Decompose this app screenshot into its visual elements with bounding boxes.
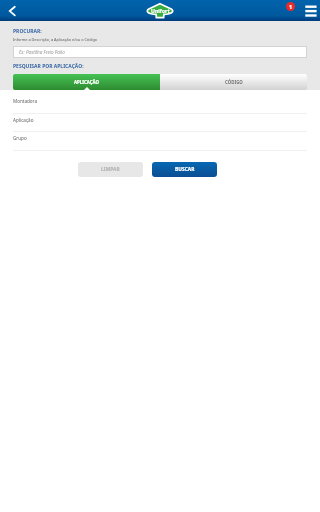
button[interactable] xyxy=(0,113,320,131)
staticText: CÓDIGO xyxy=(225,79,243,85)
button[interactable]: CÓDIGO xyxy=(160,74,307,90)
button[interactable]: BUSCAR xyxy=(152,162,217,177)
button[interactable]: Ex: Pastilha Freio Palio xyxy=(13,46,307,58)
staticText: Informe a Descrição, a Aplicação e/ou o … xyxy=(13,37,98,42)
staticText: Ex: Pastilha Freio Palio xyxy=(19,49,65,55)
staticText: Grupo xyxy=(13,135,27,141)
staticText: PESQUISAR POR APLICAÇÃO: xyxy=(13,63,84,70)
staticText: Aplicação xyxy=(13,117,34,123)
button[interactable] xyxy=(0,94,320,112)
staticText: PROCURAR: xyxy=(13,28,42,35)
button[interactable] xyxy=(0,131,320,149)
button[interactable]: LIMPAR xyxy=(78,162,143,177)
button[interactable]: Back xyxy=(0,0,22,21)
staticText: Unifort xyxy=(151,7,170,14)
staticText: LIMPAR xyxy=(101,166,120,173)
staticText: BUSCAR xyxy=(175,166,195,173)
staticText: 1 xyxy=(289,3,293,10)
staticText: APLICAÇÃO xyxy=(74,79,99,85)
button[interactable]: Menu xyxy=(300,0,320,21)
staticText: Montadora xyxy=(13,98,38,104)
button[interactable]: APLICAÇÃO xyxy=(13,74,160,90)
